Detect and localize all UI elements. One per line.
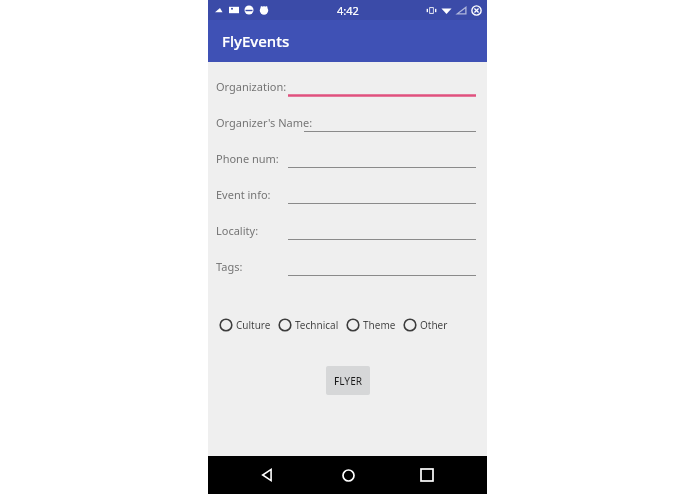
button[interactable]: Home [328,456,368,494]
button[interactable]: Organizer's Name: [208,111,487,147]
staticText: Theme [363,318,396,332]
staticText: FlyEvents [222,31,290,51]
staticText: Locality: [216,223,259,238]
staticText: Technical [295,318,339,332]
staticText: Culture [236,318,271,332]
button[interactable]: Event info: [208,183,487,219]
staticText: Event info: [216,187,271,202]
staticText: Other [420,318,448,332]
button[interactable]: Theme [346,318,396,332]
button[interactable]: Back [248,456,288,494]
button[interactable]: FLYER [326,366,370,395]
button[interactable]: Phone num: [208,147,487,183]
button[interactable]: Culture [219,318,271,332]
staticText: Phone num: [216,151,279,166]
staticText: Tags: [216,259,243,274]
staticText: Organization: [216,79,287,94]
button[interactable]: Technical [278,318,339,332]
button[interactable]: Organization: [208,75,487,111]
staticText: Organizer's Name: [216,115,313,130]
button[interactable]: Tags: [208,255,487,291]
button[interactable]: Other [403,318,448,332]
staticText: 4:42 [337,3,359,18]
staticText: FLYER [334,374,363,388]
button[interactable]: Recent apps [407,456,447,494]
button[interactable]: Locality: [208,219,487,255]
